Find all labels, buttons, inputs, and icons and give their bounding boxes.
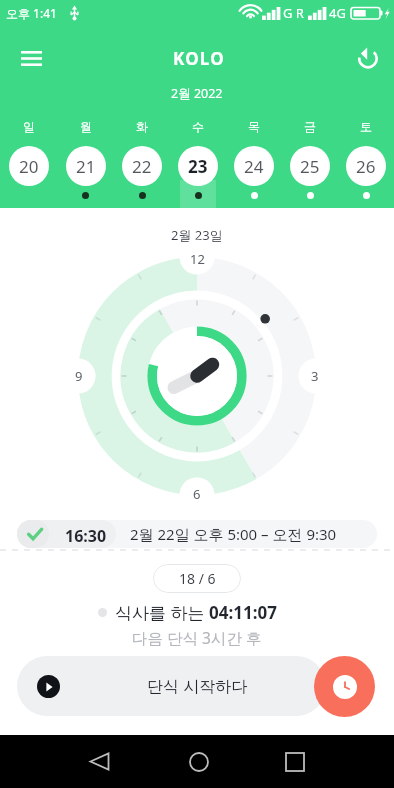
staticText: 목 [248, 119, 260, 134]
staticText: 3 [311, 367, 319, 385]
staticText: 오후 1:41 [6, 5, 57, 21]
button[interactable]: 목 [226, 110, 282, 208]
button[interactable]: 금 [282, 110, 338, 208]
staticText: 12 [190, 250, 205, 268]
button[interactable]: 월 [57, 110, 114, 208]
staticText: 일 [23, 119, 35, 134]
staticText: 수 [192, 119, 204, 134]
button[interactable]: Start timer [314, 656, 375, 717]
staticText: 단식 시작하다 [147, 675, 248, 697]
staticText: 23 [188, 155, 208, 178]
staticText: 16:30 [65, 525, 107, 547]
button[interactable]: Recents [274, 735, 316, 788]
staticText: 다음 단식 3시간 후 [132, 627, 262, 648]
staticText: 22 [132, 155, 152, 178]
staticText: 2월 23일 [171, 226, 223, 244]
button[interactable]: 화 [114, 110, 170, 208]
staticText: G R [283, 4, 304, 22]
button[interactable]: Refresh [348, 38, 388, 78]
staticText: 2월 22일 오후 5:00 – 오전 9:30 [130, 524, 337, 544]
button[interactable]: 수 [170, 110, 226, 208]
staticText: 24 [244, 155, 264, 178]
staticText: 25 [300, 155, 320, 178]
staticText: 6 [193, 485, 201, 503]
button[interactable]: 18 / 6 [153, 564, 241, 593]
button[interactable]: 16:30 [17, 520, 116, 548]
staticText: KOLO [173, 47, 225, 70]
staticText: 18 / 6 [179, 569, 216, 588]
button[interactable]: Back [78, 735, 120, 788]
staticText: 월 [80, 119, 92, 134]
button[interactable]: 일 [0, 110, 57, 208]
staticText: 2월 2022 [171, 85, 223, 102]
button[interactable]: 토 [338, 110, 394, 208]
staticText: 토 [360, 119, 372, 134]
staticText: 26 [356, 155, 376, 178]
button[interactable]: Menu [11, 38, 51, 78]
staticText: 04:11:07 [209, 601, 277, 624]
staticText: 21 [76, 155, 96, 178]
staticText: 4G [329, 4, 346, 22]
staticText: 9 [75, 367, 83, 385]
button[interactable]: Home [178, 735, 220, 788]
staticText: 식사를 하는 [115, 601, 209, 624]
staticText: 금 [304, 119, 316, 134]
button[interactable]: 2월 22일 오후 5:00 – 오전 9:30 [17, 520, 377, 548]
staticText: 20 [19, 155, 39, 178]
button[interactable] [17, 656, 326, 716]
staticText: 화 [136, 119, 148, 134]
